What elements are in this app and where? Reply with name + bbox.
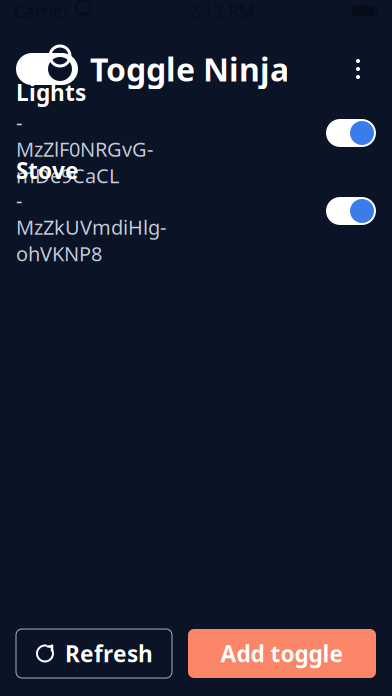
- button[interactable]: Lights: [0, 110, 392, 156]
- button[interactable]: Add toggle: [188, 629, 376, 678]
- staticText: Add toggle: [220, 638, 343, 668]
- staticText: -MzZlF0NRGvGmDe9CaCL: [16, 109, 153, 189]
- button[interactable]: More options: [340, 47, 376, 91]
- staticText: Lights: [16, 77, 86, 107]
- button[interactable]: Refresh: [16, 629, 172, 678]
- staticText: Refresh: [65, 638, 153, 668]
- button[interactable]: Stove: [0, 188, 392, 234]
- staticText: Toggle Ninja: [90, 48, 289, 90]
- staticText: -MzZkUVmdiHlgohVKNP8: [16, 187, 166, 267]
- staticText: 2:13 PM: [188, 0, 254, 22]
- staticText: Carrier: [14, 0, 70, 22]
- staticText: Stove: [16, 155, 79, 185]
